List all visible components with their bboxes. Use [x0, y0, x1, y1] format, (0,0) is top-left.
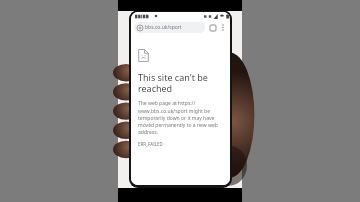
other: Site information: [137, 25, 143, 31]
button[interactable]: More options: [218, 23, 227, 32]
button[interactable]: ERR_FAILED: [138, 141, 163, 147]
staticText: The web page at https://www.bbs.co.uk/sp…: [138, 100, 220, 135]
button[interactable]: Switch tabs: [208, 23, 218, 33]
button[interactable]: Site information: [134, 22, 205, 33]
staticText: This site can't be reached: [138, 71, 220, 94]
staticText: ERR_FAILED: [138, 141, 163, 147]
staticText: bbs.co.uk/sport: [145, 24, 182, 31]
